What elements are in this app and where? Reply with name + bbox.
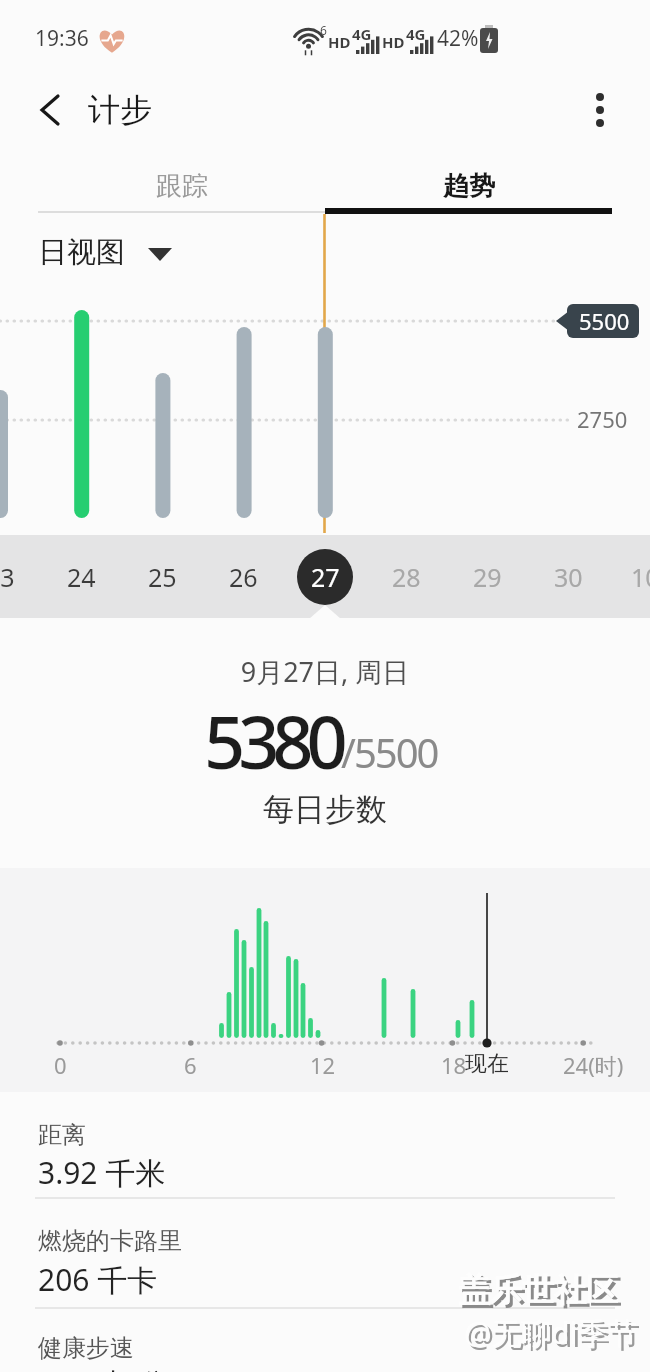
staticText: HD [328, 32, 351, 52]
staticText: 0 [54, 1050, 67, 1080]
staticText: 3.92 千米 [38, 1152, 166, 1193]
staticText: 26 [229, 560, 258, 594]
staticText: 27 [311, 560, 340, 594]
staticText: 燃烧的卡路里 [38, 1226, 182, 1256]
staticText: HD [382, 32, 405, 52]
staticText: 现在 [465, 1050, 509, 1078]
button[interactable]: 28 [366, 541, 447, 613]
staticText: 盖乐世社区 [458, 1270, 618, 1310]
staticText: 6 [184, 1050, 197, 1080]
staticText: 4G [406, 24, 426, 44]
button[interactable]: 趋势 [325, 158, 612, 214]
staticText: 24(时) [563, 1050, 624, 1080]
staticText: 30 [554, 560, 583, 594]
staticText: 25 [148, 560, 177, 594]
button[interactable]: 25 [122, 541, 203, 613]
button[interactable] [26, 84, 78, 136]
staticText: 9月27日, 周日 [0, 653, 650, 690]
staticText: 6 [320, 22, 327, 38]
button[interactable]: 26 [203, 541, 284, 613]
staticText: @无聊di季节 [464, 1312, 638, 1353]
staticText: 跟踪 [156, 170, 208, 203]
staticText: 12 [310, 1050, 336, 1080]
button[interactable]: 24 [41, 541, 122, 613]
staticText: 10月 [631, 560, 650, 594]
staticText: 23 [0, 560, 15, 594]
button[interactable]: 距离 [0, 1112, 650, 1208]
button[interactable]: 29 [447, 541, 528, 613]
staticText: 42% [437, 24, 479, 53]
button[interactable]: 30 [528, 541, 609, 613]
staticText: @无聊di季节 [467, 1315, 641, 1356]
button[interactable]: 10月 [617, 541, 650, 613]
button[interactable]: 跟踪 [38, 158, 325, 214]
staticText: 5380 [204, 692, 341, 790]
staticText: 28 [392, 560, 421, 594]
staticText: 18 [441, 1050, 467, 1080]
staticText: 19:36 [35, 24, 89, 53]
staticText: 距离 [38, 1120, 86, 1150]
staticText: 108 步/分 [38, 1363, 169, 1372]
button[interactable]: 23 [0, 541, 41, 613]
staticText: 5500 [579, 306, 630, 336]
staticText: 日视图 [38, 234, 125, 271]
staticText: 盖乐世社区 [461, 1273, 621, 1313]
staticText: 206 千卡 [38, 1259, 158, 1300]
button[interactable]: 燃烧的卡路里 [0, 1218, 650, 1314]
staticText: /5500 [341, 725, 438, 779]
staticText: 计步 [88, 90, 152, 130]
staticText: 趋势 [443, 170, 495, 203]
button[interactable]: 健康步速 [0, 1325, 650, 1372]
staticText: 2750 [577, 404, 628, 434]
staticText: 4G [352, 24, 372, 44]
staticText: 24 [67, 560, 96, 594]
staticText: 健康步速 [38, 1333, 134, 1363]
button[interactable]: 27 [297, 549, 353, 605]
button[interactable] [576, 84, 626, 136]
staticText: 每日步数 [0, 790, 650, 829]
staticText: 29 [473, 560, 502, 594]
button[interactable]: 日视图 [38, 234, 178, 278]
